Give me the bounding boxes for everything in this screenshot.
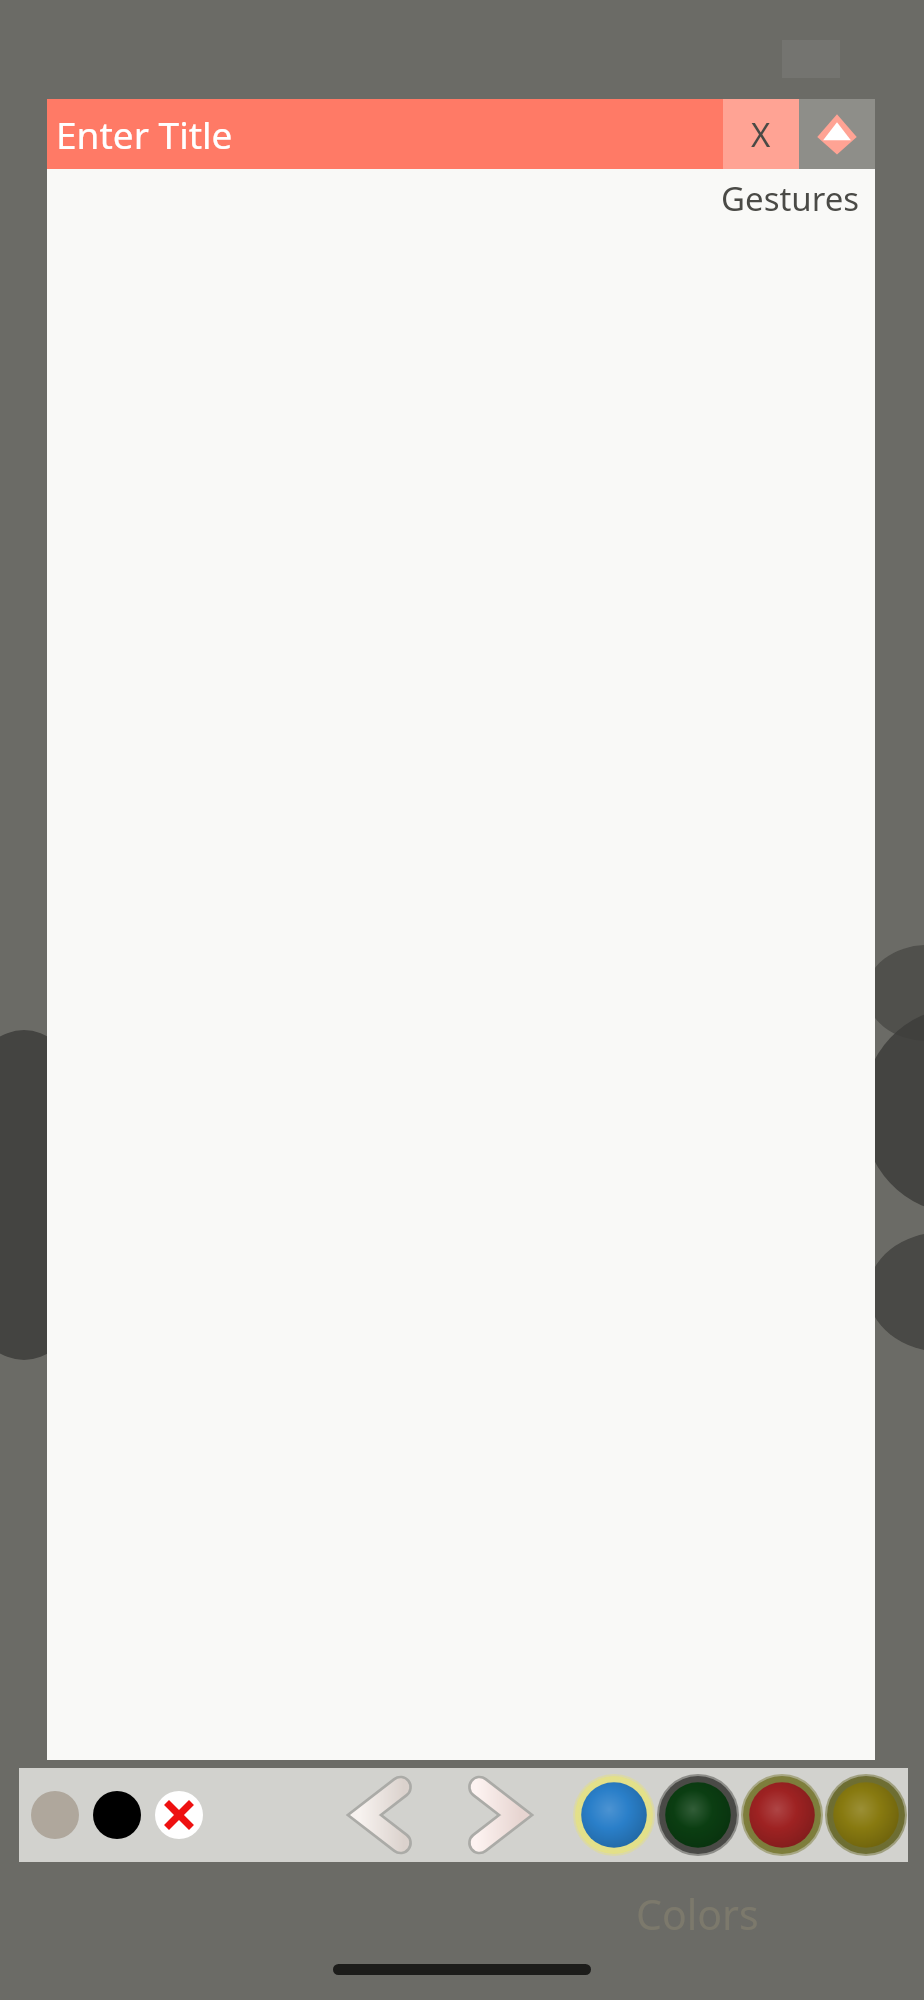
staticText: X [751, 112, 771, 157]
button[interactable]: Gestures [47, 169, 875, 1760]
button[interactable]: Undo [346, 1779, 418, 1851]
staticText: Colors [636, 1886, 759, 1942]
button[interactable]: Blue paint [572, 1773, 656, 1857]
button[interactable]: Eraser colour [28, 1788, 82, 1842]
button[interactable]: Redo [462, 1779, 534, 1851]
button[interactable]: Green paint [656, 1773, 740, 1857]
staticText: Gestures [721, 176, 860, 221]
button[interactable]: Olive paint [824, 1773, 908, 1857]
button[interactable]: Clear drawing [152, 1788, 206, 1842]
staticText: Enter Title [56, 109, 233, 159]
button[interactable]: Enter Title [47, 99, 723, 169]
button[interactable]: Collapse [799, 99, 875, 169]
button[interactable]: Clear title [723, 99, 799, 169]
button[interactable]: Black colour [90, 1788, 144, 1842]
button[interactable]: Red paint [740, 1773, 824, 1857]
